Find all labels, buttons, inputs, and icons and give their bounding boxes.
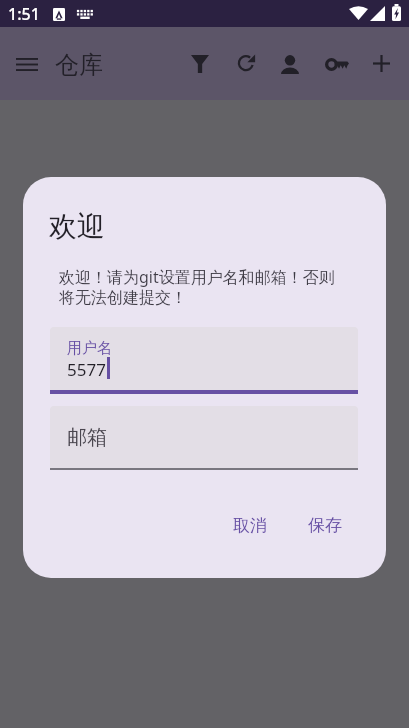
staticText: 5577: [67, 358, 106, 381]
staticText: 仓库: [55, 50, 103, 80]
button[interactable]: Filter: [175, 40, 221, 88]
staticText: 邮箱: [67, 425, 107, 450]
button[interactable]: 保存: [300, 500, 350, 551]
button[interactable]: Account: [267, 40, 313, 88]
staticText: 欢迎！请为git设置用户名和邮箱！否则将无法创建提交！: [59, 266, 344, 308]
staticText: 保存: [308, 515, 342, 536]
staticText: 取消: [233, 515, 267, 536]
button[interactable]: SSH key: [313, 40, 359, 88]
button[interactable]: Add: [359, 40, 405, 88]
button[interactable]: 用户名: [50, 327, 358, 394]
button[interactable]: Menu: [5, 42, 49, 86]
staticText: 欢迎: [49, 209, 105, 244]
button[interactable]: 邮箱: [50, 406, 358, 470]
staticText: 用户名: [67, 339, 112, 358]
staticText: 1:51: [8, 3, 40, 25]
button[interactable]: Refresh: [221, 40, 267, 88]
button[interactable]: 取消: [225, 500, 275, 551]
